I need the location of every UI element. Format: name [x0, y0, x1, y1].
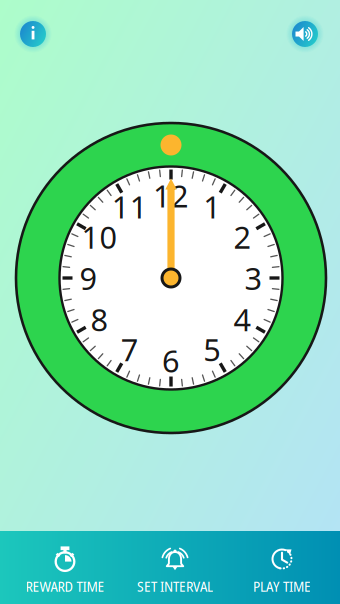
staticText: 1: [203, 186, 221, 227]
button[interactable]: Sound on: [283, 12, 327, 56]
staticText: 12: [153, 175, 189, 216]
staticText: REWARD TIME: [25, 576, 104, 596]
button[interactable]: SET INTERVAL: [121, 533, 229, 604]
button[interactable]: Information: [11, 12, 55, 56]
staticText: SET INTERVAL: [137, 576, 213, 596]
staticText: PLAY TIME: [253, 576, 311, 596]
staticText: 10: [82, 216, 118, 257]
button[interactable]: REWARD TIME: [11, 533, 119, 604]
staticText: 4: [233, 299, 251, 340]
staticText: 8: [91, 299, 109, 340]
staticText: 11: [112, 186, 148, 227]
staticText: 6: [162, 340, 180, 381]
staticText: 2: [233, 216, 251, 257]
staticText: 5: [203, 329, 221, 370]
staticText: 7: [121, 329, 139, 370]
staticText: 3: [244, 258, 262, 298]
button[interactable]: PLAY TIME: [228, 533, 336, 604]
staticText: 9: [79, 258, 97, 298]
